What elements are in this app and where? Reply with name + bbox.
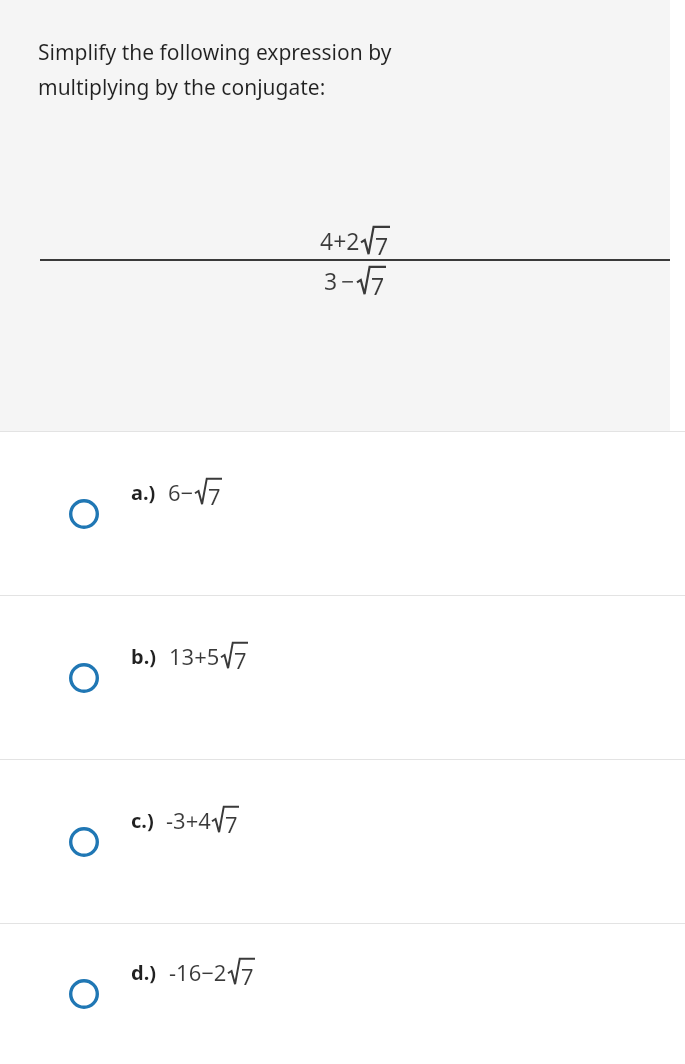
staticText: 7 — [234, 645, 247, 675]
button[interactable]: Option b — [0, 596, 685, 759]
staticText: c.) — [131, 807, 154, 834]
staticText: Simplify the following expression by mul… — [38, 38, 392, 101]
staticText: d.) — [131, 959, 157, 986]
staticText: b.) — [131, 643, 157, 670]
staticText: 13+5 — [169, 641, 220, 671]
staticText: -3+4 — [166, 805, 211, 835]
button[interactable]: Option a — [0, 432, 685, 595]
staticText: a.) — [131, 479, 156, 506]
button[interactable]: Option c — [0, 760, 685, 923]
staticText: 7 — [225, 809, 238, 839]
staticText: 7 — [371, 270, 385, 301]
staticText: − — [341, 265, 355, 296]
staticText: 7 — [375, 230, 389, 261]
staticText: 3 — [324, 265, 338, 296]
staticText: 6− — [168, 477, 194, 507]
staticText: -16−2 — [169, 957, 227, 987]
staticText: 4+2 — [320, 225, 360, 256]
staticText: 7 — [241, 961, 254, 991]
staticText: 7 — [208, 481, 221, 511]
button[interactable]: Option d — [0, 924, 685, 1064]
